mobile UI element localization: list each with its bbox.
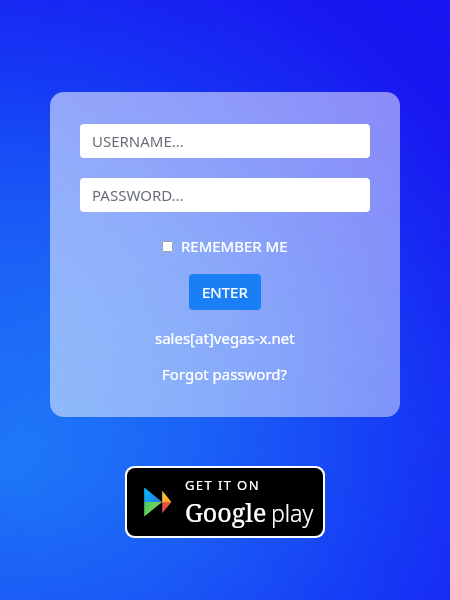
staticText: Google <box>185 495 267 529</box>
staticText: ENTER <box>202 282 248 302</box>
button[interactable]: Get it on Google Play <box>125 466 325 538</box>
staticText: USERNAME... <box>92 131 184 151</box>
button[interactable]: PASSWORD... <box>80 178 370 212</box>
button[interactable]: REMEMBER ME <box>160 234 290 258</box>
button[interactable]: USERNAME... <box>80 124 370 158</box>
staticText: REMEMBER ME <box>181 236 288 256</box>
button[interactable]: ENTER <box>189 274 261 310</box>
staticText: Forgot password? <box>162 364 288 384</box>
button[interactable]: sales[at]vegas-x.net <box>151 326 299 350</box>
staticText: sales[at]vegas-x.net <box>155 328 295 348</box>
staticText: play <box>271 497 314 528</box>
button[interactable]: Forgot password? <box>158 362 292 386</box>
staticText: GET IT ON <box>185 476 260 494</box>
staticText: PASSWORD... <box>92 185 184 205</box>
